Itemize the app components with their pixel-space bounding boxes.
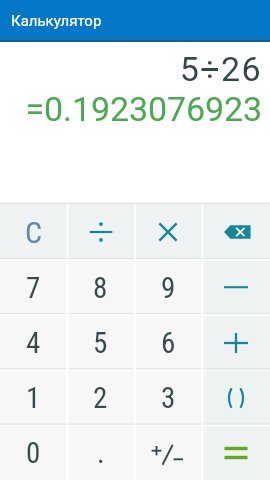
staticText: 3 [161,381,176,415]
button[interactable]: 4 [0,315,67,370]
button[interactable]: Калькулятор [0,0,270,40]
button[interactable]: 6 [134,315,202,370]
button[interactable]: 7 [0,260,67,315]
button[interactable]: Backspace [202,204,270,260]
staticText: . [97,436,105,470]
other: Plus [222,329,250,357]
staticText: 6 [161,326,176,360]
staticText: 5 [93,326,108,360]
other: Equals [222,439,250,467]
button[interactable]: . [67,425,134,480]
staticText: 0 [26,436,41,470]
staticText: 8 [93,271,108,305]
other: Multiply [154,218,182,246]
button[interactable]: 5 [67,315,134,370]
staticText: 7 [26,271,41,305]
button[interactable]: Plus [202,315,270,370]
staticText: 2 [93,381,108,415]
staticText: 5÷26 [0,49,262,89]
button[interactable]: Divide [67,204,134,260]
other: Backspace [220,216,252,248]
staticText: 1 [26,381,41,415]
staticText: 9 [161,271,176,305]
button[interactable]: 8 [67,260,134,315]
staticText: 4 [26,326,41,360]
button[interactable]: C [0,204,67,260]
other: Plus minus [148,433,188,473]
button[interactable]: Multiply [134,204,202,260]
button[interactable]: 0 [0,425,67,480]
button[interactable]: Minus [202,260,270,315]
button[interactable]: Plus minus [134,425,202,480]
button[interactable]: 1 [0,370,67,425]
button[interactable]: 9 [134,260,202,315]
button[interactable]: 3 [134,370,202,425]
staticText: =0.1923076923 [0,89,262,129]
button[interactable]: Parentheses [202,370,270,425]
button[interactable]: 2 [67,370,134,425]
button[interactable]: Equals [202,425,270,480]
other: Minus [222,274,250,302]
staticText: C [25,215,43,250]
other: Parentheses [221,383,251,413]
other: Divide [87,218,115,246]
staticText: Калькулятор [11,12,102,30]
